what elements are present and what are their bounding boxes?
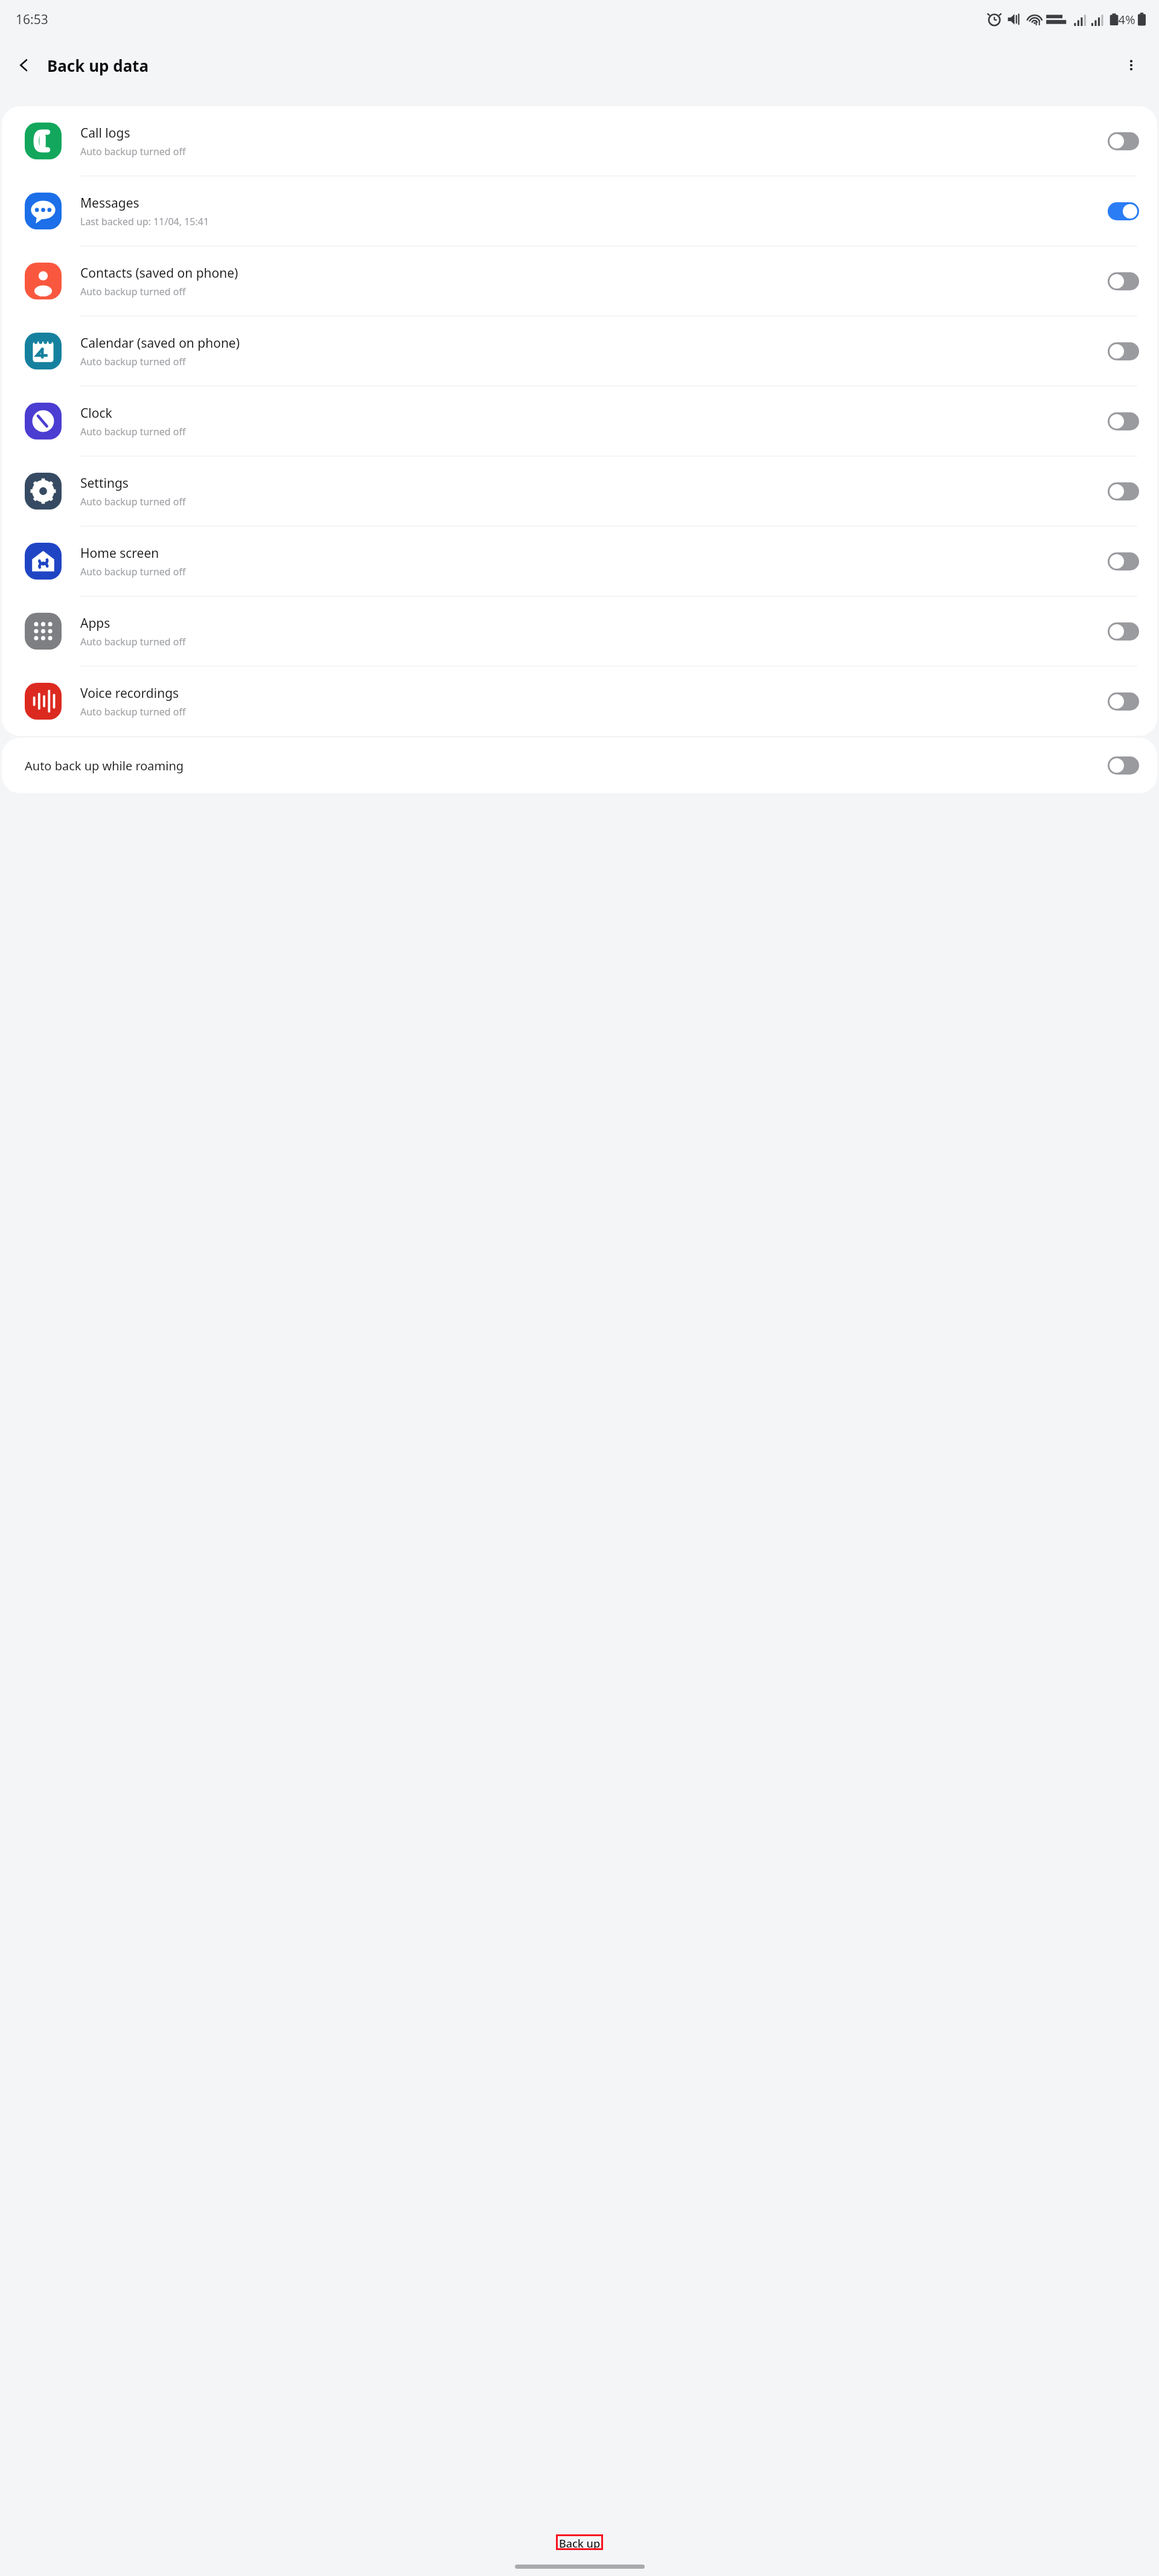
- staticText: Voice recordings: [80, 685, 179, 702]
- staticText: Call logs: [80, 124, 130, 142]
- button[interactable]: Voice recordings: [2, 666, 1157, 736]
- staticText: Auto backup turned off: [80, 355, 186, 368]
- button[interactable]: Off: [1108, 412, 1139, 430]
- staticText: Back up now: [558, 2536, 601, 2548]
- button[interactable]: Auto back up while roaming: [2, 738, 1157, 793]
- staticText: Settings: [80, 475, 129, 492]
- button[interactable]: Settings: [2, 456, 1157, 526]
- staticText: Auto backup turned off: [80, 495, 186, 508]
- staticText: Last backed up: 11/04, 15:41: [80, 215, 209, 228]
- button[interactable]: Off: [1108, 756, 1139, 775]
- staticText: Auto backup turned off: [80, 635, 186, 648]
- staticText: Auto backup turned off: [80, 705, 186, 718]
- button[interactable]: Off: [1108, 552, 1139, 570]
- button[interactable]: Clock: [2, 386, 1157, 456]
- staticText: Back up data: [47, 55, 149, 76]
- button[interactable]: Messages: [2, 176, 1157, 246]
- button[interactable]: Off: [1108, 272, 1139, 290]
- button[interactable]: Home screen: [2, 526, 1157, 596]
- staticText: Clock: [80, 404, 112, 422]
- button[interactable]: Off: [1108, 342, 1139, 360]
- button[interactable]: Apps: [2, 596, 1157, 666]
- staticText: Messages: [80, 194, 139, 212]
- staticText: Calendar (saved on phone): [80, 334, 240, 352]
- button[interactable]: Off: [1108, 482, 1139, 500]
- staticText: Auto back up while roaming: [25, 758, 1108, 774]
- staticText: Auto backup turned off: [80, 565, 186, 578]
- staticText: 16:53: [16, 11, 48, 28]
- staticText: Contacts (saved on phone): [80, 264, 238, 282]
- button[interactable]: Back: [8, 50, 40, 81]
- staticText: 84%: [1111, 11, 1135, 28]
- staticText: Auto backup turned off: [80, 145, 186, 158]
- button[interactable]: Off: [1108, 622, 1139, 641]
- button[interactable]: Off: [1108, 692, 1139, 711]
- button[interactable]: Call logs: [2, 106, 1157, 176]
- button[interactable]: Back up now: [558, 2536, 601, 2548]
- button[interactable]: Contacts (saved on phone): [2, 246, 1157, 316]
- staticText: Auto backup turned off: [80, 425, 186, 438]
- button[interactable]: Off: [1108, 132, 1139, 150]
- staticText: Home screen: [80, 545, 159, 562]
- button[interactable]: On: [1108, 202, 1139, 220]
- staticText: Apps: [80, 615, 110, 632]
- button[interactable]: More options: [1116, 50, 1147, 81]
- button[interactable]: Calendar (saved on phone): [2, 316, 1157, 386]
- staticText: Auto backup turned off: [80, 285, 186, 298]
